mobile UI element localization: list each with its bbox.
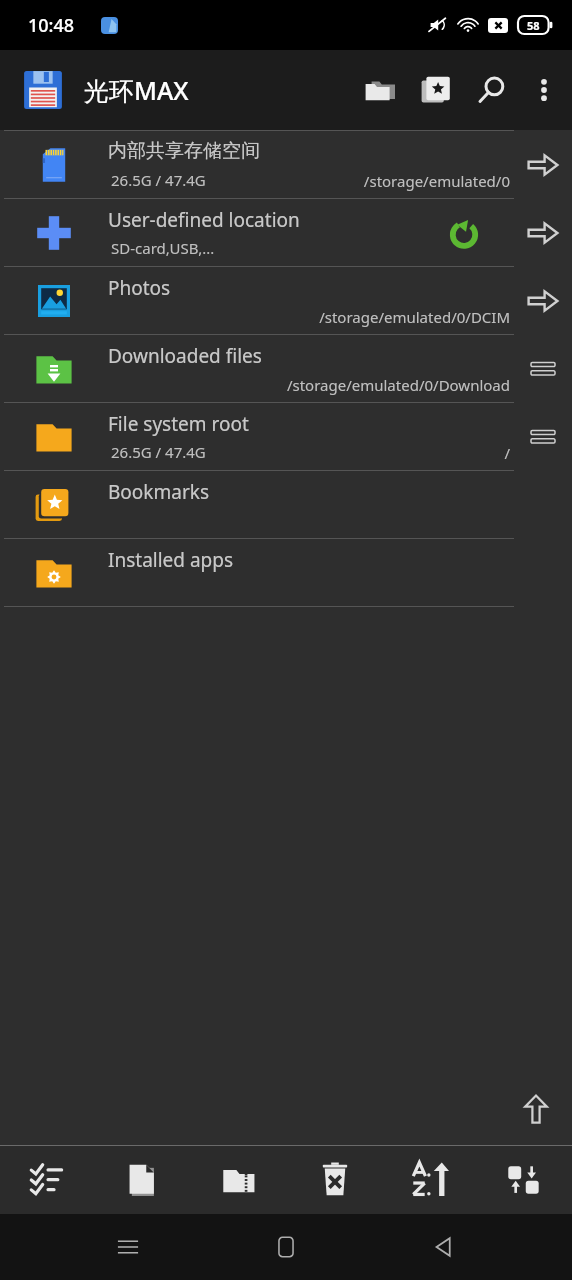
staticText: 内部共享存储空间 [108, 139, 260, 163]
button[interactable]: Archive [192, 1146, 287, 1214]
button[interactable]: File system root [0, 403, 572, 470]
button[interactable]: Bookmarks [0, 471, 572, 538]
staticText: /storage/emulated/0 [363, 171, 510, 191]
button[interactable]: Sort [382, 1146, 477, 1214]
staticText: User-defined location [108, 207, 300, 233]
staticText: 26.5G / 47.4G [111, 442, 206, 462]
button[interactable]: Open [521, 279, 565, 323]
button[interactable]: Photos [0, 267, 572, 334]
button[interactable]: Downloaded files [0, 335, 572, 402]
staticText: Bookmarks [108, 479, 210, 505]
button[interactable]: Move or copy [477, 1146, 572, 1214]
button[interactable]: Delete [287, 1146, 382, 1214]
staticText: SD-card,USB,... [111, 238, 215, 258]
button[interactable]: Search [464, 62, 520, 118]
button[interactable]: Scroll to top [514, 1087, 558, 1131]
button[interactable]: Back [414, 1217, 474, 1277]
button[interactable]: More options [520, 64, 568, 116]
staticText: /storage/emulated/0/DCIM [319, 307, 510, 327]
button[interactable]: Installed apps [0, 539, 572, 606]
button[interactable]: Refresh [444, 213, 484, 253]
staticText: Photos [108, 275, 171, 301]
button[interactable]: Select items [0, 1146, 96, 1214]
button[interactable]: Home [256, 1217, 316, 1277]
button[interactable]: App icon [20, 67, 66, 113]
staticText: / [504, 443, 510, 463]
button[interactable]: Recent apps [98, 1217, 158, 1277]
staticText: 10:48 [28, 13, 75, 38]
staticText: 26.5G / 47.4G [111, 170, 206, 190]
button[interactable]: New file [96, 1146, 192, 1214]
staticText: Downloaded files [108, 343, 262, 369]
button[interactable]: Open [521, 211, 565, 255]
button[interactable]: Reorder [521, 347, 565, 391]
button[interactable]: Reorder [521, 415, 565, 459]
staticText: 58 [527, 18, 540, 33]
button[interactable]: User-defined location [0, 199, 572, 266]
staticText: File system root [108, 411, 249, 437]
button[interactable]: Folders [352, 62, 408, 118]
button[interactable]: 内部共享存储空间 [0, 131, 572, 198]
staticText: /storage/emulated/0/Download [286, 375, 510, 395]
staticText: 光环MAX [84, 73, 189, 107]
button[interactable]: Bookmarks [408, 62, 464, 118]
staticText: Installed apps [108, 547, 234, 573]
button[interactable]: Open [521, 143, 565, 187]
